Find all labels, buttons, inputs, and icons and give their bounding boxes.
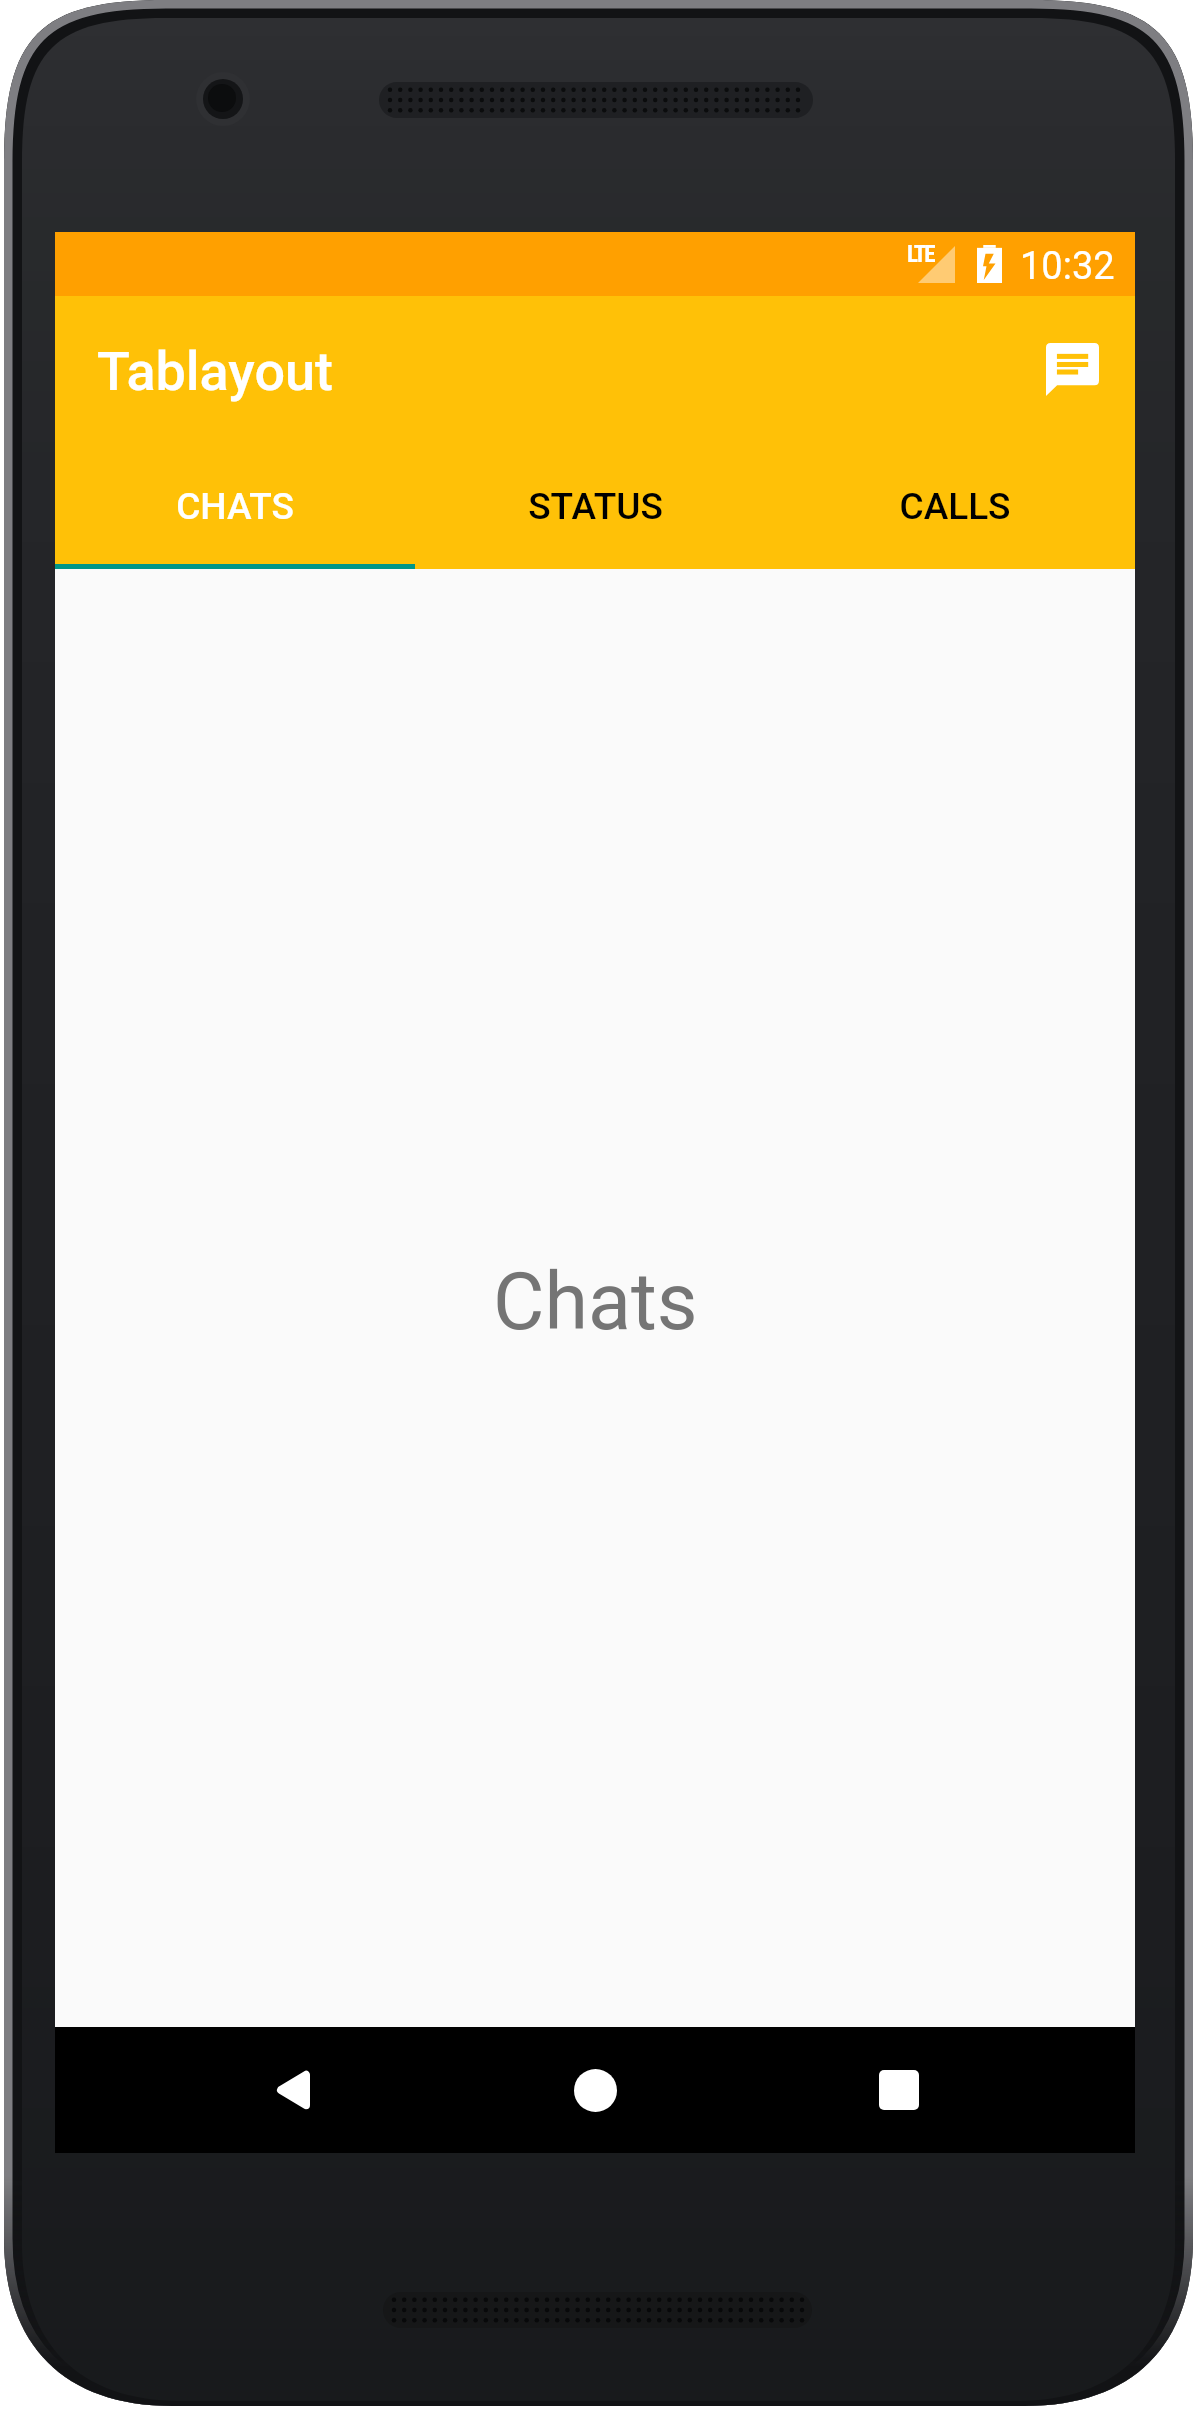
- staticText: CALLS: [899, 485, 1011, 528]
- staticText: STATUS: [528, 485, 663, 528]
- staticText: LTE: [907, 241, 934, 268]
- button[interactable]: STATUS: [415, 443, 775, 569]
- staticText: 10:32: [1020, 244, 1115, 289]
- staticText: CHATS: [176, 485, 294, 528]
- button[interactable]: Recent apps: [824, 2027, 974, 2153]
- button[interactable]: CHATS: [55, 443, 415, 569]
- staticText: Chats: [493, 1256, 698, 1349]
- button[interactable]: CALLS: [775, 443, 1135, 569]
- button[interactable]: New message: [1030, 327, 1114, 411]
- button[interactable]: Home: [520, 2027, 670, 2153]
- button[interactable]: Back: [216, 2027, 366, 2153]
- staticText: Tablayout: [97, 340, 334, 403]
